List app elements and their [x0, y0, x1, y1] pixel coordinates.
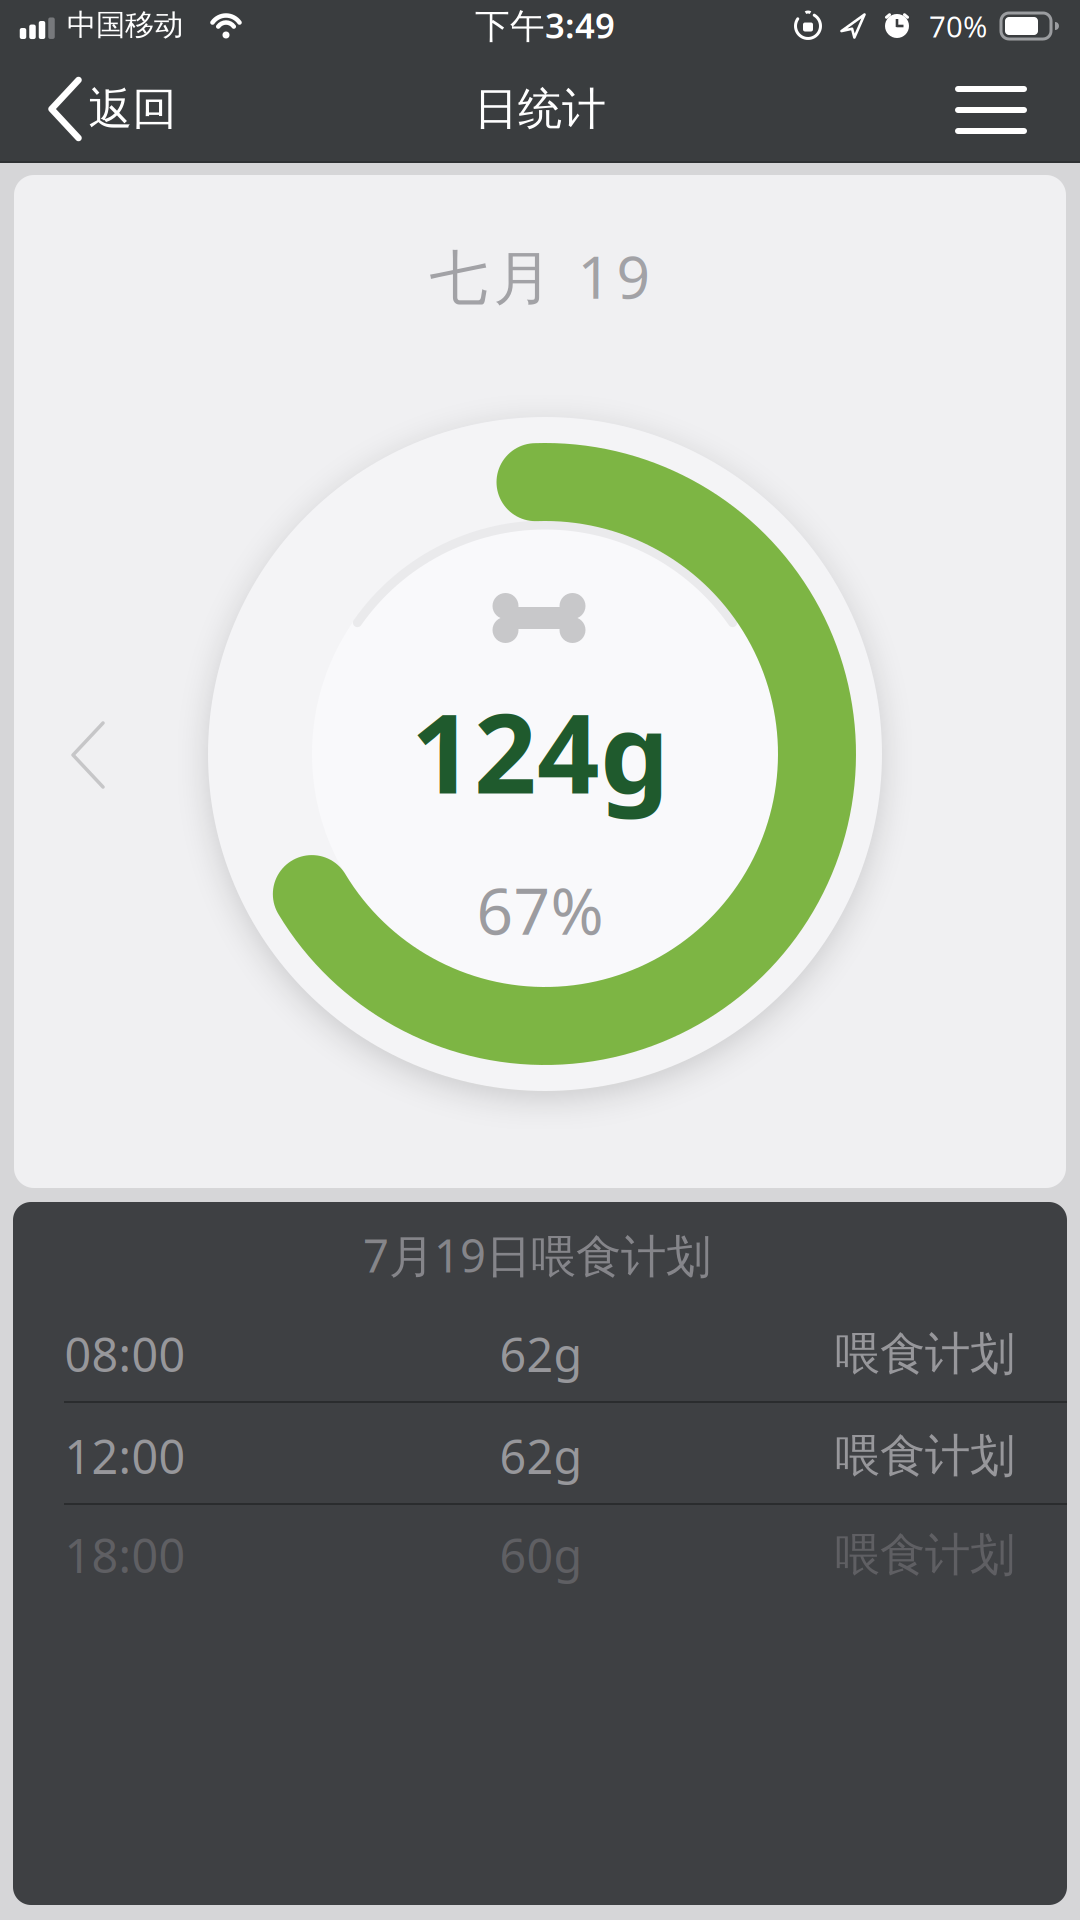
staticText: 喂食计划 [835, 1527, 1015, 1583]
staticText: 七月 19 [429, 237, 650, 315]
staticText: 70% [929, 6, 987, 45]
staticText: 日统计 [474, 82, 606, 136]
staticText: 60g [499, 1524, 582, 1586]
button[interactable]: 12:00 [13, 1407, 1067, 1505]
staticText: 7月19日喂食计划 [363, 1225, 711, 1285]
staticText: 喂食计划 [835, 1428, 1015, 1484]
staticText: 18:00 [64, 1524, 185, 1586]
button[interactable]: 返回 [51, 80, 176, 138]
staticText: 下午3:49 [475, 2, 615, 48]
button[interactable]: 08:00 [13, 1305, 1067, 1403]
staticText: 返回 [88, 82, 176, 136]
staticText: 08:00 [64, 1323, 185, 1385]
staticText: 中国移动 [67, 7, 183, 43]
staticText: 62g [499, 1323, 582, 1385]
button[interactable] [955, 86, 1027, 134]
button[interactable]: 18:00 [13, 1506, 1067, 1604]
button[interactable] [73, 723, 103, 787]
staticText: 124g [411, 678, 669, 824]
staticText: 12:00 [64, 1425, 185, 1487]
staticText: 67% [476, 867, 603, 952]
staticText: 62g [499, 1425, 582, 1487]
staticText: 喂食计划 [835, 1326, 1015, 1382]
